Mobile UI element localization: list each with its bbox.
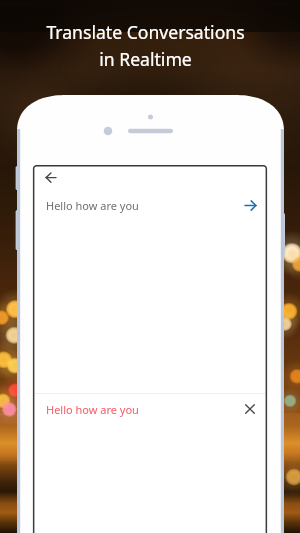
button[interactable]: Send [238, 193, 262, 217]
button[interactable]: Hello how are you [33, 193, 267, 217]
staticText: Hello how are you [46, 402, 238, 417]
button[interactable]: Close [238, 397, 262, 421]
staticText: in Realtime [99, 47, 192, 71]
button[interactable]: Hello how are you [33, 397, 267, 421]
button[interactable]: Back [38, 167, 64, 189]
staticText: Hello how are you [46, 198, 238, 213]
staticText: Translate Conversations [46, 20, 245, 44]
